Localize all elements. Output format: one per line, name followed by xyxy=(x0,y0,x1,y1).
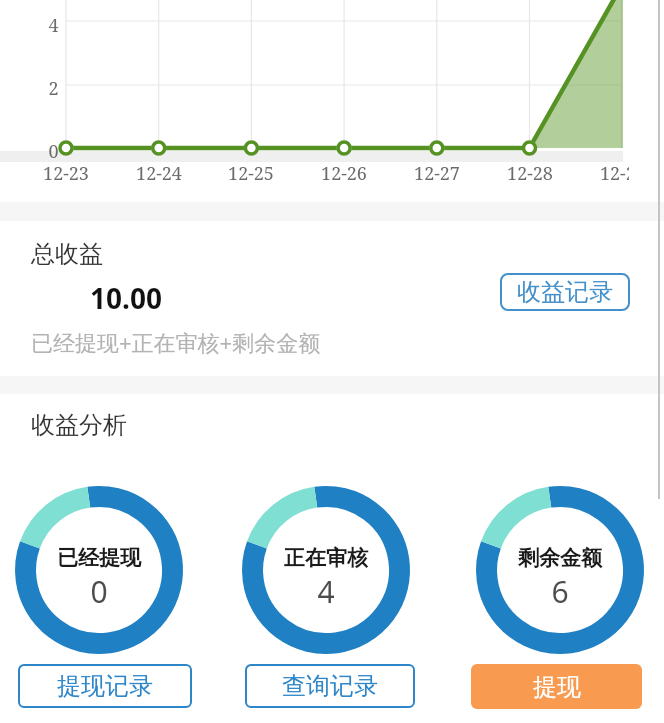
staticText: 12-26 xyxy=(321,161,367,186)
staticText: 12-28 xyxy=(507,161,553,186)
staticText: 4 xyxy=(48,13,59,38)
staticText: 0 xyxy=(90,571,108,612)
staticText: 收益分析 xyxy=(31,410,127,440)
button[interactable]: 提现记录 xyxy=(18,664,192,708)
staticText: 2 xyxy=(48,76,59,101)
staticText: 查询记录 xyxy=(282,671,378,701)
button[interactable]: 查询记录 xyxy=(245,664,415,708)
staticText: 12-27 xyxy=(414,161,460,186)
staticText: 已经提现 xyxy=(57,545,141,571)
staticText: 12-24 xyxy=(136,161,182,186)
staticText: 总收益 xyxy=(31,239,103,269)
button[interactable]: 提现 xyxy=(471,664,642,709)
staticText: 6 xyxy=(551,571,569,612)
staticText: 收益记录 xyxy=(517,277,613,307)
staticText: 10.00 xyxy=(90,279,162,317)
staticText: 4 xyxy=(317,571,335,612)
staticText: 12-29 xyxy=(600,161,629,185)
staticText: 已经提现+正在审核+剩余金额 xyxy=(31,327,321,357)
staticText: 提现 xyxy=(533,672,581,702)
staticText: 12-23 xyxy=(43,161,89,186)
staticText: 正在审核 xyxy=(284,545,368,571)
staticText: 12-25 xyxy=(228,161,274,186)
staticText: 提现记录 xyxy=(57,671,153,701)
staticText: 0 xyxy=(48,139,59,164)
button[interactable]: 收益记录 xyxy=(500,273,630,311)
staticText: 剩余金额 xyxy=(518,545,602,571)
